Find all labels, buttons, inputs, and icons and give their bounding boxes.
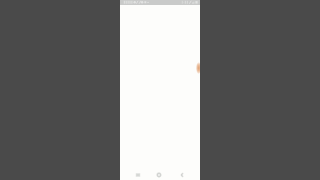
- button[interactable]: Scroll handle: [190, 61, 200, 75]
- button[interactable]: Back: [177, 170, 187, 180]
- button[interactable]: Recents: [133, 170, 143, 180]
- button[interactable]: Home: [154, 170, 164, 180]
